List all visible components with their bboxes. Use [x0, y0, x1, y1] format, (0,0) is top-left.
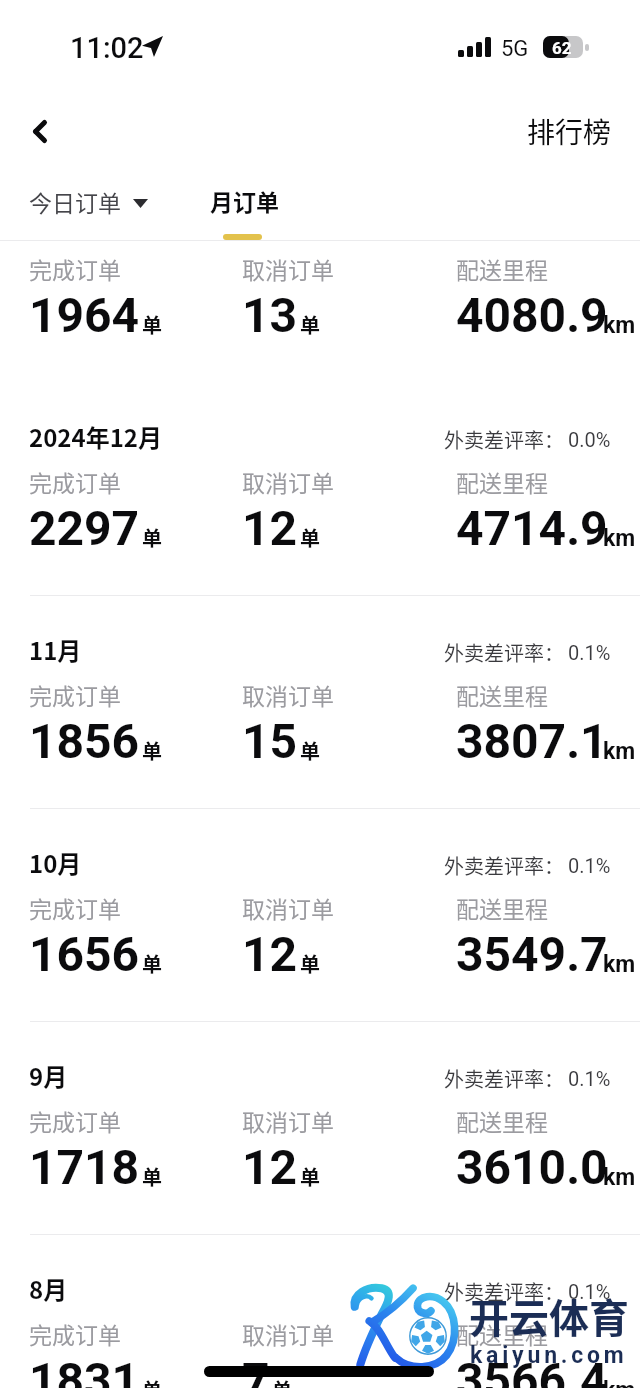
staticText: 完成订单 — [29, 252, 121, 285]
staticText: 配送里程 — [456, 891, 548, 924]
staticText: km — [603, 1164, 636, 1191]
staticText: 单 — [300, 523, 320, 552]
staticText: 0.0% — [568, 428, 611, 451]
button[interactable]: Back — [16, 96, 64, 166]
staticText: 外卖差评率： — [444, 1064, 564, 1093]
staticText: 5G — [501, 36, 529, 62]
staticText: 13 — [242, 287, 298, 343]
staticText: 单 — [142, 736, 162, 765]
staticText: 配送里程 — [456, 1317, 548, 1350]
staticText: 取消订单 — [242, 252, 334, 285]
staticText: 取消订单 — [242, 465, 334, 498]
staticText: 取消订单 — [242, 678, 334, 711]
staticText: 外卖差评率： — [444, 851, 564, 880]
staticText: 4714.9 — [456, 500, 608, 556]
staticText: 单 — [300, 949, 320, 978]
staticText: 单 — [142, 523, 162, 552]
staticText: 外卖差评率： — [444, 1277, 564, 1306]
staticText: kaiyun.com — [470, 1342, 628, 1369]
staticText: 完成订单 — [29, 891, 121, 924]
staticText: 1831 — [29, 1352, 140, 1388]
staticText: 8月 — [29, 1271, 68, 1306]
staticText: 2024年12月 — [29, 419, 162, 454]
staticText: 外卖差评率： — [444, 638, 564, 667]
staticText: 单 — [142, 310, 162, 339]
staticText: 排行榜 — [527, 111, 612, 152]
staticText: 单 — [300, 310, 320, 339]
staticText: 0.1% — [568, 1280, 611, 1303]
staticText: 取消订单 — [242, 891, 334, 924]
staticText: 15 — [242, 713, 298, 769]
staticText: 配送里程 — [456, 252, 548, 285]
staticText: 1856 — [29, 713, 140, 769]
staticText: 2297 — [29, 500, 140, 556]
staticText: 3566.4 — [456, 1352, 608, 1388]
staticText: km — [603, 1377, 636, 1388]
staticText: 1656 — [29, 926, 140, 982]
staticText: 单 — [272, 1375, 292, 1388]
staticText: 完成订单 — [29, 678, 121, 711]
staticText: 12 — [242, 500, 298, 556]
staticText: 单 — [142, 1162, 162, 1191]
staticText: 取消订单 — [242, 1104, 334, 1137]
staticText: 11月 — [29, 632, 82, 667]
staticText: 单 — [142, 949, 162, 978]
staticText: 配送里程 — [456, 1104, 548, 1137]
staticText: 单 — [142, 1375, 162, 1388]
staticText: 0.1% — [568, 641, 611, 664]
staticText: 12 — [242, 926, 298, 982]
staticText: 62 — [552, 38, 572, 58]
staticText: 单 — [300, 736, 320, 765]
staticText: 开云体育 — [469, 1287, 629, 1345]
staticText: 0.1% — [568, 854, 611, 877]
staticText: km — [603, 525, 636, 552]
staticText: km — [603, 312, 636, 339]
staticText: 3807.1 — [456, 713, 608, 769]
staticText: 4080.9 — [456, 287, 608, 343]
staticText: 月订单 — [210, 184, 279, 217]
staticText: 3610.0 — [456, 1139, 608, 1195]
staticText: 配送里程 — [456, 465, 548, 498]
staticText: 今日订单 — [29, 185, 121, 218]
staticText: 1718 — [29, 1139, 140, 1195]
staticText: 完成订单 — [29, 465, 121, 498]
staticText: km — [603, 738, 636, 765]
staticText: 取消订单 — [242, 1317, 334, 1350]
staticText: 完成订单 — [29, 1104, 121, 1137]
staticText: 完成订单 — [29, 1317, 121, 1350]
button[interactable]: 今日订单 — [29, 185, 148, 218]
staticText: 配送里程 — [456, 678, 548, 711]
staticText: 外卖差评率： — [444, 425, 564, 454]
staticText: 11:02 — [70, 31, 144, 65]
staticText: 单 — [300, 1162, 320, 1191]
staticText: 3549.7 — [456, 926, 608, 982]
staticText: 12 — [242, 1139, 298, 1195]
staticText: 1964 — [29, 287, 140, 343]
staticText: 10月 — [29, 845, 82, 880]
staticText: km — [603, 951, 636, 978]
staticText: 0.1% — [568, 1067, 611, 1090]
staticText: 7 — [242, 1352, 270, 1388]
staticText: 9月 — [29, 1058, 68, 1093]
